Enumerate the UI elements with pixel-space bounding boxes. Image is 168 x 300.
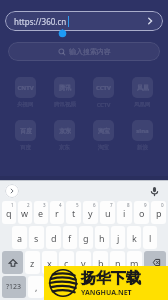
staticText: u [105,207,111,219]
staticText: , [35,281,38,293]
button[interactable]: 百度 [6,120,45,151]
button[interactable]: b [93,251,108,274]
staticText: 3 [43,202,46,208]
button[interactable]: Space [46,276,122,298]
staticText: q [6,207,12,219]
button[interactable]: 京东 [45,120,84,151]
staticText: 0 [161,202,164,208]
button[interactable]: e [34,201,48,224]
button[interactable]: Expand suggestions [5,184,19,198]
button[interactable]: q [2,201,16,224]
button[interactable]: c [59,251,74,274]
staticText: a [17,232,23,244]
staticText: p [156,207,162,219]
staticText: b [98,257,104,269]
button[interactable]: v [76,251,91,274]
button[interactable]: m [127,251,142,274]
button[interactable]: f [63,226,77,249]
button[interactable]: https://360.cn [5,11,163,31]
button[interactable]: i [117,201,132,224]
staticText: . [131,281,134,293]
staticText: d [51,232,57,244]
staticText: 扬华下载 [81,269,141,288]
staticText: c [64,257,69,269]
staticText: 央视网 [17,101,34,108]
button[interactable]: u [100,201,115,224]
staticText: CCTV [97,101,111,108]
staticText: 7 [110,202,113,208]
button[interactable]: 腾讯 [45,77,84,108]
staticText: 2 [27,202,30,208]
staticText: s [34,232,39,244]
button[interactable]: sina [123,120,162,151]
staticText: w [21,207,29,219]
button[interactable]: w [18,201,32,224]
button[interactable]: ?123 [2,276,26,298]
staticText: 腾讯 [59,84,71,92]
button[interactable]: . [124,276,140,298]
button[interactable]: o [134,201,149,224]
button[interactable]: k [127,226,141,249]
button[interactable]: x [42,251,57,274]
button[interactable]: CCTV [84,77,123,108]
staticText: 凤凰 [137,84,149,92]
staticText: g [83,232,89,244]
staticText: t [72,207,76,219]
button[interactable]: CNTV [6,77,45,108]
button[interactable]: 淘宝 [84,120,123,151]
staticText: v [81,257,86,269]
button[interactable]: Shift [2,251,23,274]
button[interactable]: Backspace [144,251,166,274]
button[interactable]: 凤凰 [123,77,162,108]
button[interactable]: t [66,201,81,224]
staticText: 6 [93,202,96,208]
button[interactable]: d [46,226,61,249]
staticText: 新浪 [137,144,148,151]
staticText: 8 [127,202,130,208]
staticText: x [47,257,52,269]
staticText: i [123,207,126,219]
button[interactable]: Go [143,14,157,28]
staticText: CNTV [17,84,34,92]
staticText: 百度 [20,127,32,135]
staticText: l [149,232,152,244]
staticText: 腾讯视频 [54,101,76,108]
button[interactable]: r [50,201,64,224]
button[interactable]: , [28,276,44,298]
staticText: 凤凰网 [134,101,151,108]
button[interactable]: a [12,226,27,249]
staticText: h [99,232,105,244]
button[interactable]: y [83,201,98,224]
staticText: https://360.cn [14,16,67,27]
staticText: y [88,207,93,219]
button[interactable]: 输入搜索内容 [8,42,160,61]
button[interactable]: p [151,201,166,224]
button[interactable]: l [143,226,157,249]
button[interactable]: n [110,251,125,274]
button[interactable]: s [29,226,44,249]
staticText: z [30,257,35,269]
staticText: YANGHUA.NET [81,288,132,298]
staticText: m [130,257,139,269]
button[interactable]: z [25,251,40,274]
staticText: r [55,207,59,219]
staticText: 9 [144,202,147,208]
staticText: f [68,232,72,244]
button[interactable]: Voice input [147,184,161,198]
staticText: j [117,232,120,244]
staticText: k [132,232,137,244]
staticText: 京东 [59,127,71,135]
button[interactable]: g [79,226,93,249]
staticText: 淘宝 [98,127,110,135]
staticText: CCTV [96,84,111,92]
staticText: n [115,257,121,269]
button[interactable]: j [111,226,125,249]
staticText: e [38,207,44,219]
staticText: o [139,207,145,219]
button[interactable]: h [95,226,109,249]
staticText: sina [136,127,149,135]
staticText: ?123 [6,282,22,292]
staticText: 5 [76,202,79,208]
other: Text cursor handle [58,29,67,38]
